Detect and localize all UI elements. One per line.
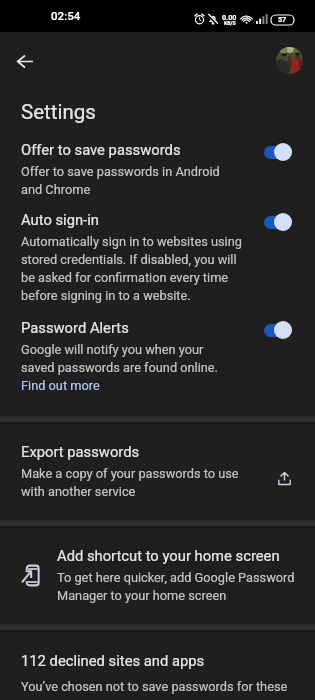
staticText: Automatically sign in to websites using … <box>21 232 242 304</box>
staticText: 112 declined sites and apps <box>21 650 205 671</box>
staticText: Auto sign-in <box>21 209 99 230</box>
button[interactable]: Find out more <box>21 376 100 394</box>
button[interactable]: Back <box>5 41 45 81</box>
staticText: You’ve chosen not to save passwords for … <box>21 677 288 695</box>
staticText: To get here quicker, add Google Password… <box>57 568 295 604</box>
staticText: Google will notify you when your saved p… <box>21 340 218 376</box>
button[interactable] <box>0 538 315 610</box>
button[interactable] <box>0 434 315 506</box>
button[interactable] <box>0 643 315 700</box>
staticText: Make a copy of your passwords to use wit… <box>21 464 239 500</box>
staticText: Offer to save passwords <box>21 139 181 160</box>
staticText: 0.00 <box>222 13 237 21</box>
staticText: Password Alerts <box>21 317 129 338</box>
button[interactable] <box>0 203 315 307</box>
staticText: KB/S <box>224 21 236 27</box>
button[interactable]: Toggle <box>264 213 292 231</box>
button[interactable] <box>0 132 315 200</box>
button[interactable] <box>0 311 315 397</box>
staticText: 02:54 <box>51 10 81 23</box>
staticText: Offer to save passwords in Android and C… <box>21 162 220 198</box>
staticText: Add shortcut to your home screen <box>57 545 280 566</box>
other: Export passwords <box>277 471 292 486</box>
button[interactable]: Toggle <box>264 321 292 339</box>
button[interactable]: Toggle <box>264 143 292 161</box>
staticText: 57 <box>278 16 287 24</box>
staticText: Settings <box>21 98 96 124</box>
staticText: Export passwords <box>21 441 140 462</box>
button[interactable]: Account <box>276 47 303 74</box>
